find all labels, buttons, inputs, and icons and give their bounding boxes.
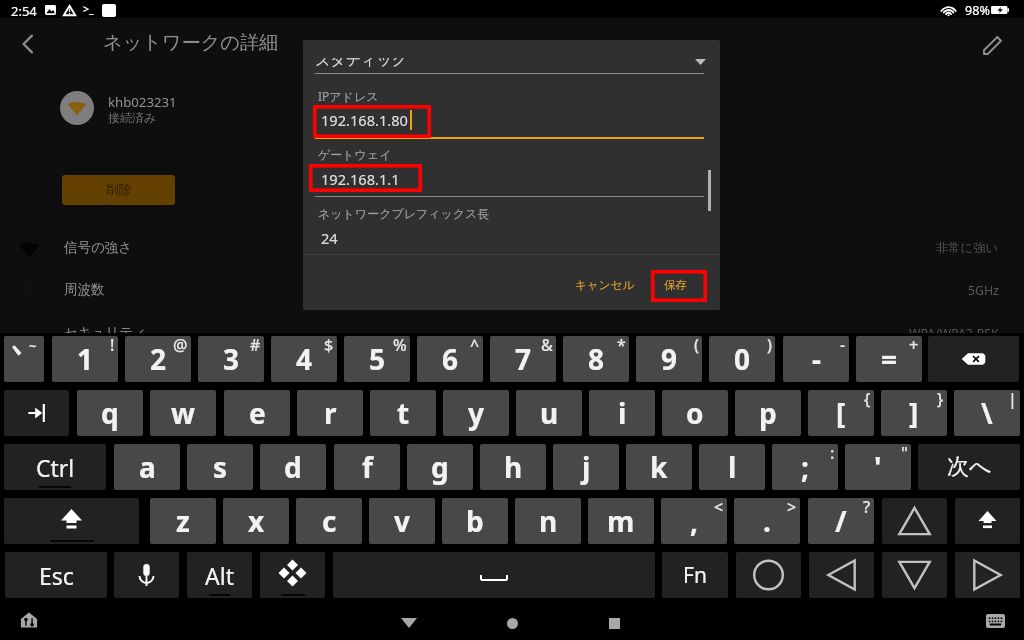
button[interactable]: Home — [500, 611, 524, 635]
button[interactable]: 保存 — [648, 269, 704, 301]
button[interactable]: 9 — [636, 336, 702, 382]
button[interactable]: ] — [881, 390, 947, 436]
button[interactable]: z — [150, 498, 216, 544]
button[interactable]: a — [114, 444, 180, 490]
button[interactable]: o — [662, 390, 728, 436]
button[interactable]: Space — [333, 552, 655, 598]
button[interactable]: Right arrow — [955, 552, 1020, 598]
button[interactable]: \ — [954, 390, 1020, 436]
button[interactable]: k — [626, 444, 692, 490]
button[interactable]: Edit — [973, 26, 1011, 64]
button[interactable]: セキュリティ — [0, 312, 1024, 354]
button[interactable]: . — [734, 498, 800, 544]
staticText: j — [582, 448, 591, 486]
staticText: ' — [874, 448, 882, 486]
button[interactable]: Recent apps — [602, 611, 626, 635]
staticText: khb023231 — [108, 93, 177, 111]
button[interactable]: n — [515, 498, 581, 544]
staticText: # — [250, 336, 261, 356]
button[interactable]: Home — [736, 552, 801, 598]
button[interactable]: Backspace — [928, 336, 1019, 382]
button[interactable]: Tab — [4, 390, 69, 436]
button[interactable]: q — [77, 390, 143, 436]
staticText: t — [397, 394, 410, 432]
staticText: v — [394, 502, 410, 540]
staticText: h — [504, 448, 523, 486]
button[interactable]: Ctrl — [4, 444, 106, 490]
button[interactable]: Fn — [662, 552, 728, 598]
button[interactable]: w — [150, 390, 216, 436]
button[interactable]: l — [699, 444, 765, 490]
button[interactable]: - — [783, 336, 849, 382]
staticText: & — [541, 336, 553, 356]
button[interactable]: Shift — [4, 498, 139, 544]
button[interactable]: i — [589, 390, 655, 436]
button[interactable]: / — [808, 498, 874, 544]
button[interactable]: Up arrow — [882, 498, 947, 544]
button[interactable]: 信号の強さ — [0, 227, 1024, 269]
button[interactable]: 4 — [271, 336, 337, 382]
button[interactable]: t — [370, 390, 436, 436]
button[interactable]: 次へ — [918, 444, 1020, 490]
button[interactable]: , — [661, 498, 727, 544]
staticText: $ — [324, 336, 334, 356]
button[interactable]: p — [735, 390, 801, 436]
button[interactable]: v — [369, 498, 435, 544]
staticText: 98% — [965, 2, 990, 19]
button[interactable]: Device controls — [17, 608, 41, 632]
button[interactable]: [ — [808, 390, 874, 436]
button[interactable]: d — [260, 444, 326, 490]
staticText: - — [812, 340, 821, 378]
button[interactable]: s — [187, 444, 253, 490]
button[interactable]: 1 — [52, 336, 118, 382]
staticText: ~ — [29, 337, 37, 355]
staticText: 信号の強さ — [64, 239, 133, 256]
button[interactable]: x — [223, 498, 289, 544]
button[interactable]: ' — [845, 444, 911, 490]
button[interactable]: Backquote — [4, 336, 44, 382]
button[interactable]: u — [516, 390, 582, 436]
button[interactable]: Esc — [5, 552, 107, 598]
button[interactable]: = — [856, 336, 922, 382]
staticText: { — [864, 390, 871, 410]
button[interactable]: e — [224, 390, 290, 436]
button[interactable]: j — [553, 444, 619, 490]
button[interactable]: 削除 — [62, 175, 175, 205]
button[interactable]: ; — [772, 444, 838, 490]
button[interactable]: f — [334, 444, 400, 490]
button[interactable]: 0 — [709, 336, 775, 382]
staticText: ] — [909, 394, 919, 432]
button[interactable]: Voice input — [114, 552, 179, 598]
button[interactable]: Left arrow — [809, 552, 874, 598]
button[interactable]: y — [443, 390, 509, 436]
button[interactable]: 8 — [563, 336, 629, 382]
button[interactable]: 3 — [198, 336, 264, 382]
staticText: 3 — [223, 340, 240, 378]
staticText: p — [759, 394, 777, 432]
button[interactable]: Switch keyboard — [983, 609, 1007, 633]
button[interactable]: 周波数 — [0, 269, 1024, 311]
button[interactable]: r — [297, 390, 363, 436]
staticText: ! — [110, 336, 115, 356]
staticText: - — [840, 336, 846, 356]
staticText: ? — [863, 498, 871, 518]
staticText: d — [284, 448, 302, 486]
button[interactable]: 2 — [125, 336, 191, 382]
button[interactable]: Back — [397, 611, 421, 635]
button[interactable]: 6 — [417, 336, 483, 382]
staticText: = — [881, 340, 898, 378]
button[interactable]: Alt — [187, 552, 252, 598]
button[interactable]: m — [588, 498, 654, 544]
button[interactable]: b — [442, 498, 508, 544]
button[interactable]: キャンセル — [565, 269, 645, 301]
button[interactable]: g — [407, 444, 473, 490]
button[interactable]: Back — [10, 26, 46, 62]
button[interactable]: h — [480, 444, 546, 490]
button[interactable]: Shift — [955, 498, 1020, 544]
button[interactable]: c — [296, 498, 362, 544]
button[interactable]: Emoji — [260, 552, 325, 598]
button[interactable]: Down arrow — [882, 552, 947, 598]
button[interactable]: 7 — [490, 336, 556, 382]
button[interactable]: 5 — [344, 336, 410, 382]
staticText: 次へ — [947, 453, 992, 481]
